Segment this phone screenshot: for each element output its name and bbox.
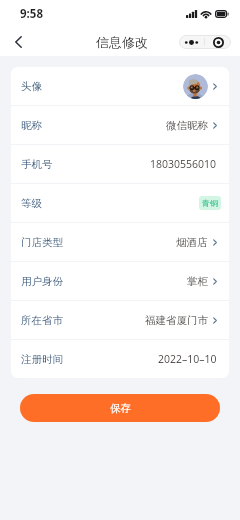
button[interactable]: Back (8, 32, 28, 52)
staticText: 信息修改 (96, 34, 148, 50)
staticText: 所在省市 (21, 314, 63, 327)
staticText: 18030556010 (150, 157, 217, 171)
button[interactable]: 门店类型 (11, 223, 229, 261)
button[interactable]: More options (179, 35, 204, 49)
button[interactable]: 用户身份 (11, 262, 229, 300)
staticText: 昵称 (21, 119, 42, 132)
staticText: 等级 (21, 197, 42, 210)
staticText: 福建省厦门市 (145, 314, 208, 327)
button[interactable]: 头像 (11, 67, 229, 105)
staticText: 注册时间 (21, 353, 63, 366)
staticText: 头像 (21, 80, 42, 93)
staticText: 掌柜 (187, 275, 208, 288)
button[interactable]: 保存 (20, 394, 220, 422)
staticText: 青铜 (202, 198, 218, 208)
button[interactable]: 等级 (11, 184, 229, 222)
staticText: 烟酒店 (176, 236, 208, 249)
button[interactable]: Close mini program (205, 35, 231, 49)
button[interactable]: 所在省市 (11, 301, 229, 339)
button[interactable]: 昵称 (11, 106, 229, 144)
staticText: 手机号 (21, 158, 53, 171)
staticText: 2022–10–10 (158, 352, 217, 366)
staticText: 微信昵称 (166, 119, 208, 132)
button[interactable]: 注册时间 (11, 340, 229, 378)
staticText: 9:58 (20, 6, 43, 22)
staticText: 保存 (110, 402, 131, 415)
button[interactable]: 手机号 (11, 145, 229, 183)
staticText: 门店类型 (21, 236, 63, 249)
staticText: 用户身份 (21, 275, 63, 288)
